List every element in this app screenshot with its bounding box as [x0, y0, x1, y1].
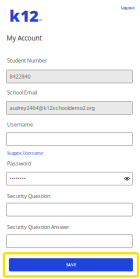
staticText: ™ — [39, 18, 42, 24]
staticText: Student Number — [7, 57, 47, 64]
staticText: k12 — [9, 5, 38, 26]
staticText: audrey2464@k12schooldemo2.org — [9, 104, 94, 111]
staticText: SAVE — [66, 262, 76, 267]
button[interactable]: Show password — [123, 175, 131, 183]
staticText: •••••••• — [9, 175, 25, 182]
staticText: Security Question Answer — [7, 223, 69, 230]
staticText: Suggest Username — [7, 150, 43, 155]
button[interactable]: Suggest Username — [6, 149, 44, 157]
button[interactable]: SAVE — [4, 253, 138, 276]
staticText: Logout — [121, 5, 135, 10]
staticText: Security Question — [7, 192, 50, 200]
staticText: Username — [7, 121, 33, 128]
staticText: 8422840 — [9, 73, 30, 80]
staticText: My Account — [7, 34, 42, 42]
button[interactable]: Logout — [119, 3, 136, 12]
staticText: School Email — [7, 89, 37, 96]
staticText: Password — [7, 160, 31, 167]
